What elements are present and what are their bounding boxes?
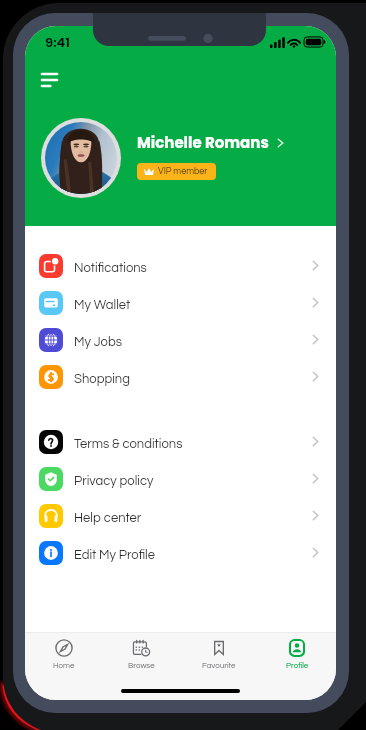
button[interactable]: Edit My Profile <box>25 534 336 571</box>
button[interactable]: Browse <box>102 635 180 673</box>
button[interactable]: Open navigation menu <box>37 64 69 96</box>
staticText: Notifications <box>74 261 147 274</box>
staticText: Privacy policy <box>74 474 154 487</box>
button[interactable]: Favourite <box>180 635 258 673</box>
button[interactable]: My Jobs <box>25 321 336 358</box>
button[interactable]: My Wallet <box>25 284 336 321</box>
button[interactable]: Profile <box>258 635 336 673</box>
staticText: Favourite <box>202 661 236 669</box>
staticText: My Wallet <box>74 298 131 311</box>
staticText: Browse <box>128 661 155 669</box>
button[interactable]: Michelle Romans <box>137 132 284 153</box>
button[interactable]: Home <box>25 635 102 673</box>
button[interactable]: Terms & conditions <box>25 423 336 460</box>
button[interactable]: VIP member <box>137 163 216 180</box>
staticText: VIP member <box>158 167 208 176</box>
staticText: Home <box>53 661 75 669</box>
staticText: Profile <box>286 661 309 669</box>
button[interactable]: Notifications <box>25 247 336 284</box>
staticText: Terms & conditions <box>74 437 183 450</box>
staticText: Michelle Romans <box>137 132 269 153</box>
staticText: Help center <box>74 511 142 524</box>
staticText: Edit My Profile <box>74 548 155 561</box>
button[interactable]: Privacy policy <box>25 460 336 497</box>
button[interactable]: Shopping <box>25 358 336 395</box>
button[interactable]: Help center <box>25 497 336 534</box>
staticText: 9:41 <box>45 33 70 51</box>
staticText: Shopping <box>74 372 130 385</box>
staticText: My Jobs <box>74 335 122 348</box>
